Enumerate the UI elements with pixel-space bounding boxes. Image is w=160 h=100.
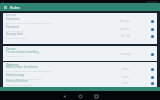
button[interactable]: Personal device handling bbox=[3, 50, 157, 57]
staticText: Rules bbox=[10, 5, 20, 10]
staticText: Keep data in sync bbox=[6, 54, 26, 57]
button[interactable]: Storage limit bbox=[3, 32, 157, 39]
button[interactable]: Password bbox=[3, 25, 157, 32]
staticText: Password bbox=[6, 25, 19, 29]
staticText: Battery usage bbox=[6, 73, 25, 77]
button[interactable]: Back bbox=[60, 92, 68, 100]
staticText: Reference bbox=[6, 63, 19, 67]
button[interactable]: Info about Personal device handling bbox=[150, 52, 154, 56]
button[interactable]: Home bbox=[76, 92, 84, 100]
staticText: Cloud quota in use bbox=[6, 36, 28, 39]
button[interactable]: Info about Battery saver limitations bbox=[150, 67, 154, 71]
button[interactable]: Username bbox=[3, 17, 157, 24]
button[interactable]: Recent apps bbox=[92, 92, 100, 100]
button[interactable]: Info about Battery Monitors bbox=[150, 81, 154, 85]
button[interactable]: Battery saver limitations bbox=[3, 65, 157, 72]
button[interactable]: Info about Battery usage bbox=[150, 75, 154, 79]
button[interactable]: Info about Username bbox=[150, 19, 154, 23]
staticText: Battery Monitors bbox=[6, 79, 29, 83]
staticText: Alerts about rapid drain bbox=[6, 83, 33, 86]
staticText: Last set recently bbox=[6, 29, 25, 32]
button[interactable]: Info about Storage limit bbox=[150, 34, 154, 38]
staticText: view bbox=[122, 81, 128, 85]
staticText: manage bbox=[120, 52, 131, 56]
staticText: change bbox=[120, 19, 130, 23]
staticText: Username bbox=[6, 17, 20, 21]
staticText: learn bbox=[122, 67, 129, 71]
staticText: open bbox=[122, 75, 129, 79]
staticText: Apps that drained power today bbox=[6, 77, 41, 80]
staticText: Storage limit bbox=[6, 32, 23, 36]
button[interactable]: Info about Password bbox=[150, 27, 154, 31]
button[interactable]: Battery Monitors bbox=[3, 79, 157, 86]
button[interactable]: Battery usage bbox=[3, 73, 157, 80]
staticText: Battery saver limitations bbox=[6, 65, 38, 69]
staticText: 2.5 GB bbox=[121, 34, 130, 38]
staticText: Some features pause while saving power bbox=[6, 69, 52, 72]
button[interactable]: Open navigation menu bbox=[3, 5, 8, 10]
staticText: Account bbox=[6, 13, 17, 17]
staticText: Devices bbox=[6, 47, 16, 51]
staticText: Choose a name that others will see here bbox=[6, 21, 51, 24]
staticText: update bbox=[120, 27, 130, 31]
staticText: Personal device handling bbox=[6, 50, 39, 54]
